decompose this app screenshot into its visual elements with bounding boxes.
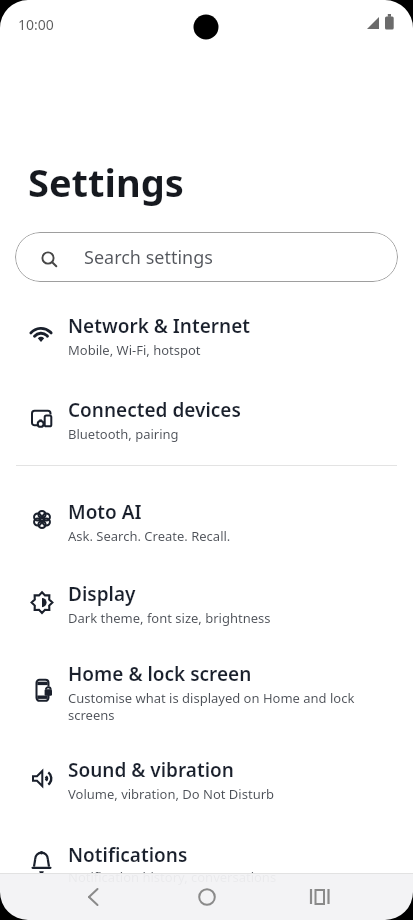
button[interactable]	[69, 873, 117, 920]
button[interactable]	[296, 873, 344, 920]
button[interactable]: Search settings	[15, 232, 398, 282]
button[interactable]	[183, 873, 231, 920]
staticText: Notification history, conversations	[68, 868, 277, 886]
button[interactable]: Display	[0, 559, 413, 643]
staticText: Notifications	[68, 842, 188, 868]
staticText: Network & Internet	[68, 313, 250, 339]
staticText: Settings	[28, 156, 184, 208]
staticText: 10:00	[18, 15, 54, 34]
staticText: Bluetooth, pairing	[68, 425, 179, 443]
staticText: Dark theme, font size, brightness	[68, 609, 271, 627]
button[interactable]: Connected devices	[0, 375, 413, 459]
button[interactable]: Network & Internet	[0, 291, 413, 375]
staticText: Connected devices	[68, 397, 241, 423]
staticText: Moto AI	[68, 499, 142, 525]
button[interactable]: Notifications	[0, 819, 413, 903]
staticText: Ask. Search. Create. Recall.	[68, 527, 231, 545]
button[interactable]: Home & lock screen	[0, 643, 413, 735]
staticText: Mobile, Wi-Fi, hotspot	[68, 341, 201, 359]
staticText: Volume, vibration, Do Not Disturb	[68, 785, 275, 803]
staticText: Search settings	[84, 245, 213, 270]
staticText: Home & lock screen	[68, 661, 252, 687]
staticText: Display	[68, 581, 136, 607]
staticText: Customise what is displayed on Home and …	[68, 689, 385, 724]
staticText: Sound & vibration	[68, 757, 234, 783]
button[interactable]: Sound & vibration	[0, 735, 413, 819]
button[interactable]: Moto AI	[0, 479, 413, 559]
